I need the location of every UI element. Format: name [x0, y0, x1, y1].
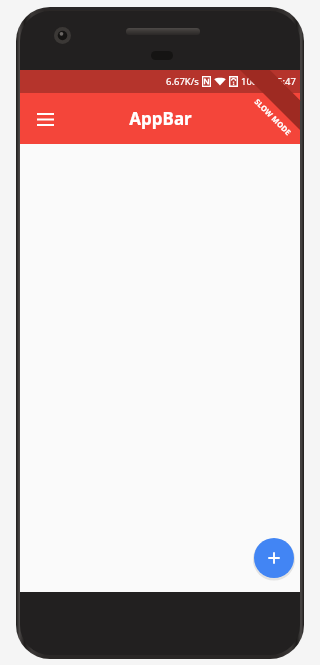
staticText: 5:47	[277, 75, 296, 88]
staticText: 6.67K/s	[166, 75, 199, 88]
staticText: SLOW MODE	[249, 112, 297, 122]
button[interactable]: Open navigation menu	[28, 102, 62, 136]
staticText: 100%	[241, 75, 266, 88]
staticText: AppBar	[129, 107, 192, 130]
button[interactable]: Add	[254, 538, 294, 578]
